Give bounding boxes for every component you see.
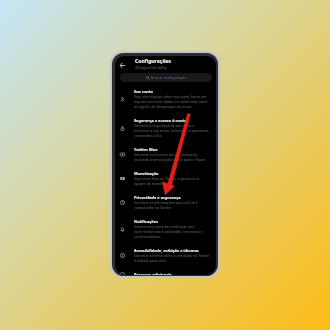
button[interactable]: Privacidade e segurança bbox=[115, 195, 216, 219]
staticText: você recebe sobre atividades, interesses… bbox=[134, 229, 203, 234]
staticText: Notificações bbox=[134, 219, 158, 224]
staticText: recomendações. bbox=[134, 234, 162, 239]
staticText: Privacidade e segurança bbox=[134, 195, 181, 200]
staticText: @ViagemTecnoDia bbox=[135, 65, 167, 70]
staticText: Gerencie a segurança da sua conta e bbox=[134, 123, 195, 128]
button[interactable]: Acessibilidade, exibição e idiomas bbox=[115, 248, 216, 272]
staticText: Veja informações sobre sua conta, baixe … bbox=[134, 94, 207, 99]
staticText: monitore a sua conta, incluindo os aplic… bbox=[134, 128, 209, 133]
button[interactable]: Notificações bbox=[115, 219, 216, 248]
staticText: Sua conta bbox=[134, 89, 153, 94]
button[interactable]: Twitter Blue bbox=[115, 147, 216, 171]
staticText: Segurança e acesso à conta bbox=[134, 118, 187, 123]
staticText: arquivo com seus dados ou saiba mais sob… bbox=[134, 99, 208, 104]
button[interactable]: Buscar configuração bbox=[120, 73, 212, 82]
staticText: Configurações bbox=[135, 58, 172, 65]
staticText: Gerencie a forma como o conteúdo no Twit… bbox=[134, 253, 210, 258]
staticText: Veja como ficar no Twitter e gerencie as bbox=[134, 176, 200, 181]
staticText: Monetização bbox=[134, 171, 159, 176]
button[interactable]: Recursos adicionais bbox=[115, 272, 216, 275]
staticText: Buscar configuração bbox=[151, 75, 187, 80]
button[interactable]: Monetização bbox=[115, 171, 216, 195]
staticText: Twitter Blue bbox=[134, 147, 158, 152]
button[interactable]: Back bbox=[117, 60, 127, 70]
staticText: Recursos adicionais bbox=[134, 272, 172, 275]
button[interactable]: Segurança e acesso à conta bbox=[115, 118, 216, 147]
staticText: Acessibilidade, exibição e idiomas bbox=[134, 248, 199, 253]
staticText: Gerencie as informações que você vê e bbox=[134, 200, 198, 205]
staticText: Selecione os tipos de notificação que bbox=[134, 224, 195, 229]
staticText: opções de monetização. bbox=[134, 181, 174, 186]
staticText: as opções de desativação de conta. bbox=[134, 104, 192, 109]
staticText: incluindo o tempo para editar após o Twe… bbox=[134, 157, 207, 162]
staticText: conectados a ela. bbox=[134, 133, 163, 138]
staticText: Gerencie os recursos do seu assinante, bbox=[134, 152, 198, 157]
button[interactable]: Sua conta bbox=[115, 89, 216, 118]
staticText: compartilha no Twitter. bbox=[134, 205, 172, 210]
staticText: é exibido para você. bbox=[134, 258, 167, 263]
